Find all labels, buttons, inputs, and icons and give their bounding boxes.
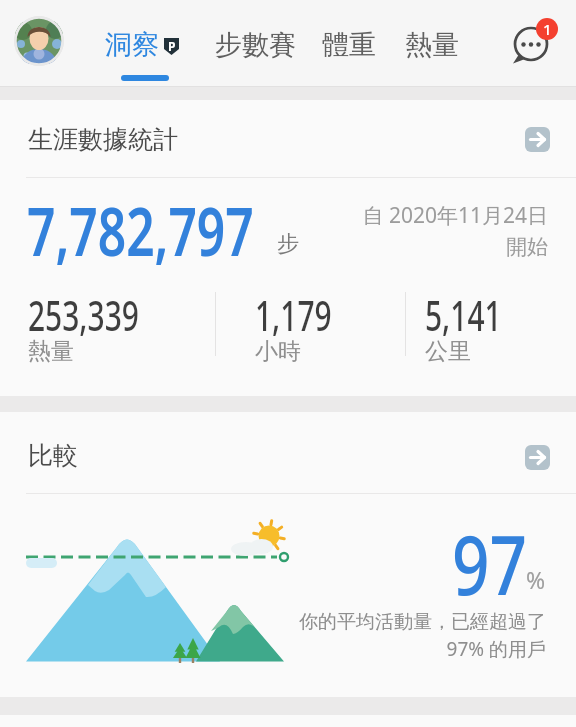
staticText: 自 2020年11月24日 開始 xyxy=(280,201,548,260)
staticText: 1 xyxy=(543,19,552,39)
button[interactable]: 熱量 xyxy=(405,28,459,62)
staticText: 生涯數據統計 xyxy=(28,124,178,155)
staticText: 比較 xyxy=(28,440,78,471)
button[interactable]: 步數賽 xyxy=(215,28,296,62)
staticText: 7,782,797 xyxy=(27,185,254,275)
button[interactable]: 體重 xyxy=(322,28,376,62)
staticText: P xyxy=(168,38,176,54)
staticText: % xyxy=(526,564,546,595)
staticText: 熱量 xyxy=(28,337,74,366)
staticText: 253,339 xyxy=(28,287,139,343)
staticText: 公里 xyxy=(425,337,471,366)
staticText: 步 xyxy=(277,230,299,258)
staticText: 小時 xyxy=(255,337,301,366)
button[interactable]: 洞察 xyxy=(105,28,159,62)
button[interactable] xyxy=(525,445,550,470)
staticText: 1,179 xyxy=(255,287,332,343)
staticText: 5,141 xyxy=(425,287,502,343)
staticText: 你的平均活動量，已經超過了 xyxy=(146,610,546,634)
staticText: 97 xyxy=(452,507,527,619)
staticText: 97% 的用戶 xyxy=(146,636,546,662)
button[interactable]: 1 xyxy=(504,18,560,70)
button[interactable] xyxy=(14,16,64,66)
button[interactable] xyxy=(525,127,550,152)
